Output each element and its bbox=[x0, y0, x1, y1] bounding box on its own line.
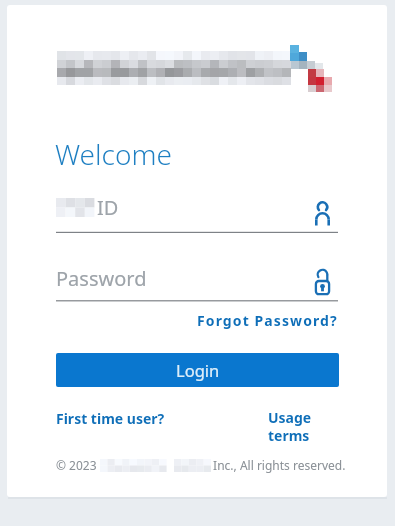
staticText: Login bbox=[176, 359, 220, 381]
button[interactable]: First time user? bbox=[56, 409, 165, 428]
staticText: Forgot Password? bbox=[197, 311, 338, 330]
staticText: Welcome bbox=[55, 135, 172, 173]
staticText: Inc., All rights reserved. bbox=[210, 457, 346, 473]
button[interactable]: Usage terms bbox=[268, 408, 340, 445]
button[interactable]: Password bbox=[56, 258, 338, 302]
staticText: Usage terms bbox=[268, 408, 340, 445]
staticText: © 2023 bbox=[56, 457, 100, 473]
button[interactable]: Login bbox=[56, 353, 339, 387]
button[interactable]: Forgot Password? bbox=[197, 311, 338, 330]
button[interactable]: ID bbox=[56, 192, 338, 233]
staticText: First time user? bbox=[56, 409, 165, 428]
staticText: Password bbox=[56, 265, 147, 292]
staticText: ID bbox=[97, 194, 119, 221]
